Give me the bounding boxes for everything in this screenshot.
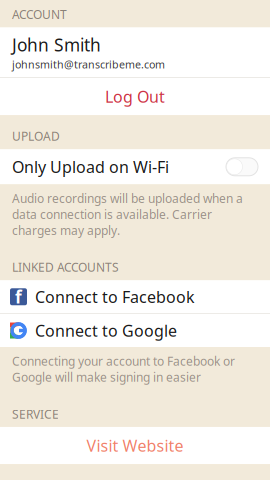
button[interactable]: f xyxy=(0,280,270,313)
staticText: Visit Website xyxy=(86,435,183,456)
staticText: John Smith xyxy=(12,33,101,56)
button[interactable]: Connect to Google xyxy=(0,314,270,347)
staticText: Only Upload on Wi-Fi xyxy=(12,156,169,177)
staticText: Connect to Facebook xyxy=(35,286,195,307)
staticText: Connect to Google xyxy=(35,320,177,341)
staticText: johnsmith@transcribeme.com xyxy=(12,57,165,71)
staticText: Log Out xyxy=(105,86,165,107)
staticText: Connecting your account to Facebook or G… xyxy=(12,353,235,385)
staticText: f xyxy=(15,285,22,308)
button[interactable]: Only Upload on Wi-Fi xyxy=(0,149,270,184)
staticText: Audio recordings will be uploaded when a… xyxy=(12,190,243,238)
button[interactable]: Visit Website xyxy=(0,427,270,464)
staticText: UPLOAD xyxy=(12,128,60,144)
button[interactable]: Log Out xyxy=(0,78,270,115)
staticText: SERVICE xyxy=(12,406,59,422)
staticText: LINKED ACCOUNTS xyxy=(12,259,119,275)
staticText: ACCOUNT xyxy=(12,6,67,22)
button[interactable]: John Smith xyxy=(0,27,270,77)
